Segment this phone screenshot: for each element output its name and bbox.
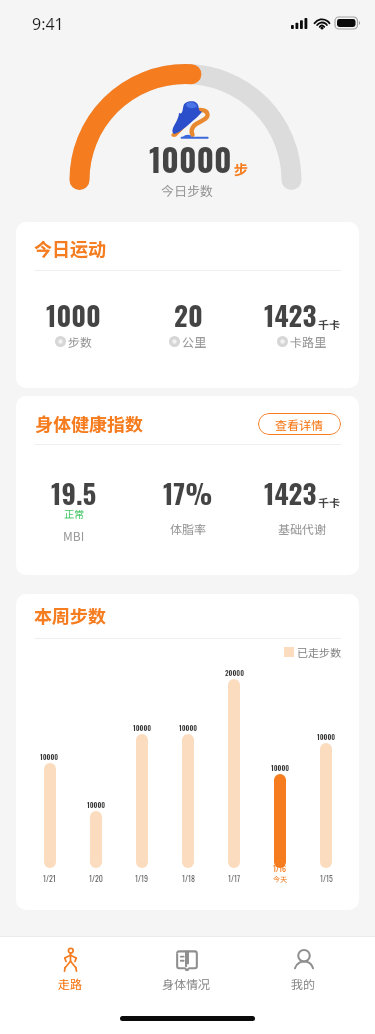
staticText: 20000 <box>225 668 244 678</box>
staticText: 步数 <box>68 333 93 350</box>
staticText: 基础代谢 <box>278 520 327 537</box>
staticText: 19.5 <box>51 473 97 513</box>
staticText: 17% <box>163 473 213 513</box>
staticText: 本周步数 <box>34 602 106 628</box>
staticText: 身体健康指数 <box>35 410 143 434</box>
staticText: 公里 <box>182 333 207 350</box>
staticText: 9:41 <box>32 13 64 35</box>
staticText: 已走步数 <box>297 644 341 660</box>
staticText: 正常 <box>64 506 84 520</box>
staticText: 走路 <box>58 975 83 992</box>
staticText: 1423 <box>264 295 317 335</box>
staticText: MBI <box>63 527 85 544</box>
staticText: 1/18 <box>182 872 195 884</box>
staticText: 今天 <box>273 874 287 884</box>
staticText: 1/21 <box>43 872 56 884</box>
button[interactable]: 身体情况 <box>128 937 245 992</box>
staticText: 千卡 <box>318 494 340 510</box>
staticText: 20 <box>174 295 203 335</box>
staticText: 今日步数 <box>161 181 214 200</box>
staticText: 查看详情 <box>275 416 324 433</box>
staticText: 1000 <box>46 295 101 335</box>
button[interactable]: 查看详情 <box>258 413 341 435</box>
staticText: 10000 <box>149 135 232 182</box>
staticText: 步 <box>234 159 248 179</box>
staticText: 10000 <box>317 732 336 742</box>
staticText: 今日运动 <box>34 235 106 261</box>
staticText: 10000 <box>179 723 198 733</box>
staticText: 10000 <box>87 800 106 810</box>
staticText: 1/17 <box>228 872 240 884</box>
staticText: 10000 <box>133 723 152 733</box>
staticText: 1/16 <box>273 862 287 874</box>
staticText: 1423 <box>264 473 317 513</box>
staticText: 体脂率 <box>170 520 207 537</box>
button[interactable]: 走路 <box>12 937 128 992</box>
staticText: 1/15 <box>320 872 333 884</box>
staticText: 卡路里 <box>290 333 327 350</box>
staticText: 10000 <box>40 752 59 762</box>
staticText: 1/20 <box>89 872 103 884</box>
staticText: 10000 <box>271 763 290 773</box>
button[interactable]: 我的 <box>245 937 362 992</box>
staticText: 我的 <box>291 975 316 992</box>
staticText: 1/19 <box>135 872 149 884</box>
staticText: 千卡 <box>318 316 340 332</box>
staticText: 身体情况 <box>162 975 211 992</box>
